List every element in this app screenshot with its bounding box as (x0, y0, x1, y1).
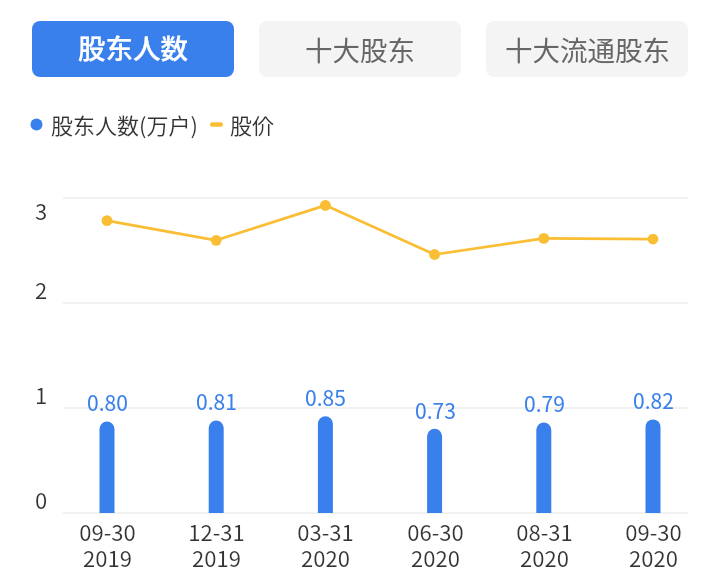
staticText: 十大股东 (305, 29, 415, 69)
staticText: 股价 (230, 108, 275, 140)
staticText: 1 (35, 378, 48, 410)
staticText: 2020 (629, 541, 678, 573)
staticText: 0.79 (524, 388, 565, 418)
staticText: 0.73 (415, 395, 456, 425)
staticText: 0.81 (196, 386, 237, 416)
staticText: 12-31 (188, 515, 245, 547)
staticText: 08-31 (516, 515, 573, 547)
staticText: 0.80 (87, 387, 128, 417)
staticText: 2020 (301, 541, 350, 573)
tab[interactable]: 十大股东 (259, 21, 461, 77)
staticText: 十大流通股东 (505, 29, 670, 69)
staticText: 2019 (83, 541, 132, 573)
staticText: 09-30 (625, 515, 682, 547)
staticText: 03-31 (297, 515, 354, 547)
tab[interactable]: 股东人数 (32, 21, 234, 77)
tab[interactable]: 十大流通股东 (486, 21, 688, 77)
staticText: 06-30 (407, 515, 464, 547)
staticText: 2 (35, 273, 48, 305)
staticText: 股东人数 (78, 27, 188, 67)
staticText: 0 (35, 483, 48, 515)
staticText: 3 (35, 194, 48, 226)
staticText: 股东人数(万户) (51, 108, 198, 140)
other: 股东人数与股价走势图 (0, 170, 720, 520)
staticText: 09-30 (79, 515, 136, 547)
staticText: 0.82 (633, 385, 674, 415)
staticText: 2020 (411, 541, 460, 573)
staticText: 2019 (192, 541, 241, 573)
staticText: 2020 (520, 541, 569, 573)
staticText: 0.85 (305, 382, 346, 412)
